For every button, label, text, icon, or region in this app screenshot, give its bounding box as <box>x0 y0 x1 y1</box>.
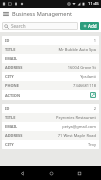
staticText: ID <box>5 38 10 43</box>
staticText: CITY <box>5 74 14 79</box>
button[interactable]: Open navigation menu <box>0 8 12 20</box>
staticText: TITLE <box>5 47 16 52</box>
button[interactable]: Edit <box>90 92 96 98</box>
staticText: ACTION <box>5 93 21 98</box>
staticText: 1 <box>93 38 96 43</box>
staticText: ID <box>5 106 10 111</box>
button[interactable]: Back <box>15 166 29 180</box>
button[interactable]: Add <box>80 22 99 30</box>
staticText: Troy <box>88 142 96 147</box>
staticText: 71 West Maple Road <box>57 133 96 138</box>
button[interactable]: Recent apps <box>72 166 86 180</box>
staticText: EMAIL <box>5 124 18 129</box>
button[interactable]: ID <box>2 36 99 100</box>
staticText: ADDRESS <box>5 133 23 138</box>
staticText: Peyronies Restaurant <box>56 115 96 120</box>
staticText: 16004 Grove St <box>67 65 96 70</box>
staticText: Business Management <box>12 10 72 18</box>
staticText: Mr Bubble Auto Spa <box>58 47 96 52</box>
staticText: 2 <box>93 106 96 111</box>
staticText: Search <box>11 23 26 29</box>
staticText: PHONE <box>5 83 19 88</box>
staticText: 11:45 <box>88 1 99 7</box>
staticText: ADDRESS <box>5 65 23 70</box>
button[interactable]: Search <box>2 22 78 30</box>
staticText: TITLE <box>5 115 16 120</box>
staticText: 7346681118 <box>73 83 96 88</box>
staticText: Add <box>88 23 97 29</box>
button[interactable]: ID <box>2 104 99 149</box>
staticText: petya@gmail.com <box>62 124 96 129</box>
button[interactable]: Home <box>44 166 58 180</box>
staticText: CITY <box>5 142 14 147</box>
staticText: Ypsilanti <box>80 74 96 79</box>
staticText: EMAIL <box>5 56 18 61</box>
